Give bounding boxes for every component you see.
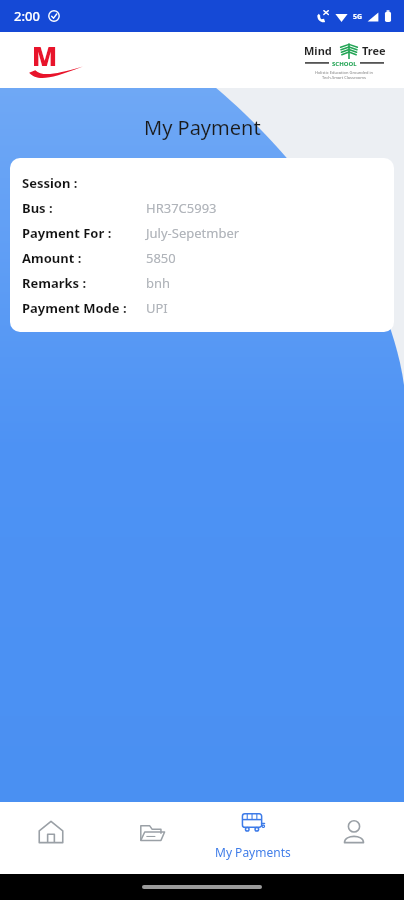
other: Mind Tree School logo [294,40,394,80]
button[interactable]: Session : [10,158,394,332]
button[interactable]: Home [0,802,101,874]
staticText: UPI [146,299,168,317]
staticText: Bus : [22,199,53,217]
staticText: Amount : [22,249,82,267]
staticText: M [32,38,58,73]
button[interactable]: Profile [303,802,404,874]
staticText: Tree [362,43,386,58]
staticText: My Payment [144,114,261,141]
other: App logo [28,38,90,82]
staticText: 5G [353,12,363,22]
staticText: 2:00 [14,7,40,25]
staticText: bnh [146,274,171,292]
staticText: HR37C5993 [146,199,217,217]
button[interactable]: My Payments [202,802,303,874]
staticText: My Payments [215,844,291,860]
staticText: 5850 [146,249,176,267]
staticText: Remarks : [22,274,87,292]
staticText: Mind [304,43,332,58]
staticText: Payment Mode : [22,299,127,317]
staticText: Holistic Education Grounded in Tech-Smar… [294,70,394,80]
staticText: Payment For : [22,224,112,242]
button[interactable]: Documents [101,802,202,874]
staticText: SCHOOL [332,60,357,68]
staticText: Session : [22,174,78,192]
staticText: July-Sepetmber [146,224,240,242]
